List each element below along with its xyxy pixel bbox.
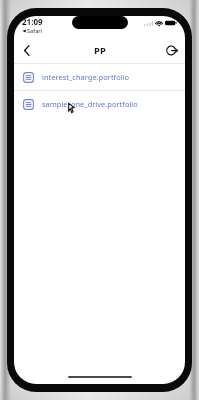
staticText: interest_charge.portfolio bbox=[42, 72, 130, 82]
button[interactable]: interest_charge.portfolio bbox=[14, 64, 185, 90]
button[interactable]: Back bbox=[14, 37, 40, 63]
staticText: PP bbox=[94, 44, 106, 57]
staticText: sample_one_drive.portfolio bbox=[42, 99, 138, 109]
staticText: Safari bbox=[27, 27, 43, 34]
staticText: 21:09 bbox=[22, 16, 43, 27]
button[interactable]: Log out bbox=[159, 37, 185, 63]
button[interactable]: sample_one_drive.portfolio bbox=[14, 91, 185, 117]
